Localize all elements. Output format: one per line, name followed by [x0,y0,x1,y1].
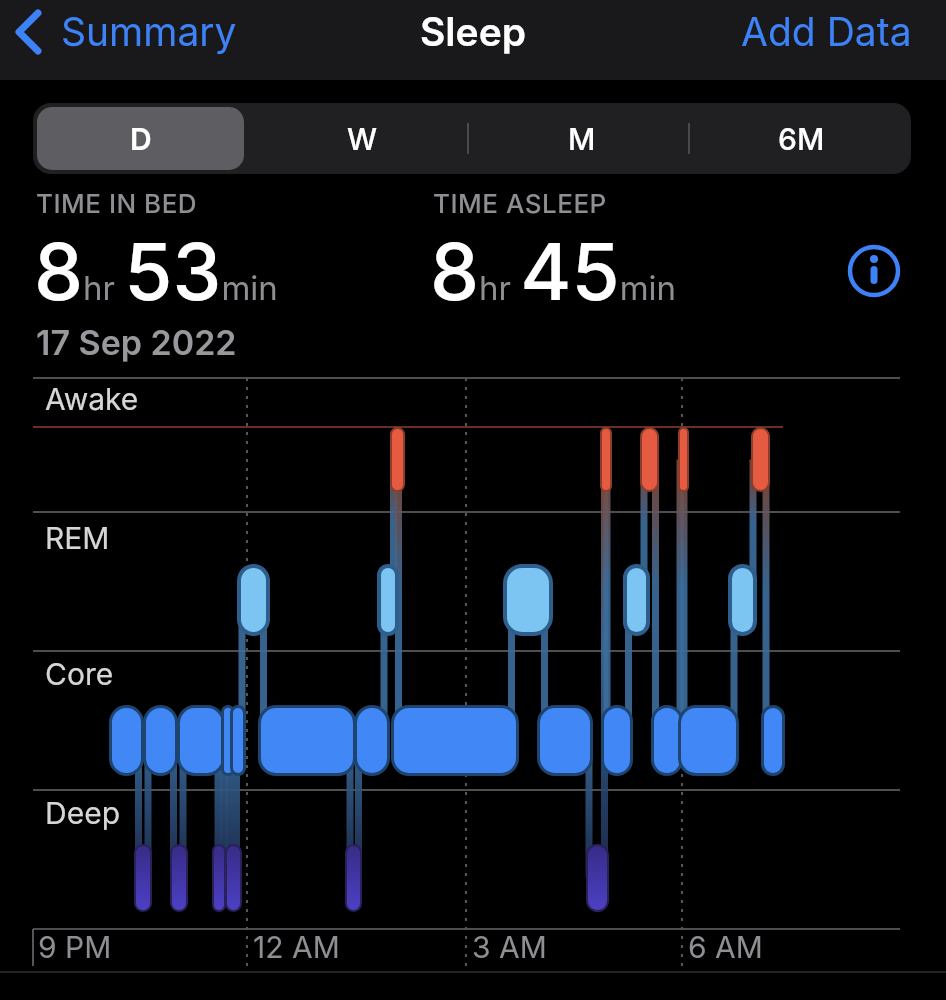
staticText: M [568,121,596,157]
button[interactable]: M [472,103,692,174]
button[interactable]: D [37,107,244,170]
staticText: 9 PM [38,929,112,965]
staticText: 6 AM [688,929,763,965]
staticText: Awake [45,381,139,417]
button[interactable]: W [252,103,472,174]
button[interactable] [846,243,902,299]
staticText: 6M [778,121,825,157]
staticText: Deep [45,795,120,831]
staticText: Core [45,656,114,692]
staticText: 17 Sep 2022 [36,322,237,363]
staticText: REM [45,520,110,556]
button[interactable]: Add Data [741,8,946,55]
staticText: Add Data [741,8,912,55]
staticText: D [130,121,152,157]
button[interactable]: 6M [692,103,911,174]
staticText: Sleep [420,8,527,55]
staticText: 12 AM [253,929,340,965]
staticText: 3 AM [472,929,547,965]
staticText: 8hr 53min [34,224,278,318]
staticText: Summary [61,8,237,55]
staticText: W [347,121,378,157]
staticText: 8hr 45min [430,224,677,318]
staticText: TIME IN BED [36,188,198,219]
staticText: TIME ASLEEP [433,188,607,219]
button[interactable]: Summary [0,8,237,55]
